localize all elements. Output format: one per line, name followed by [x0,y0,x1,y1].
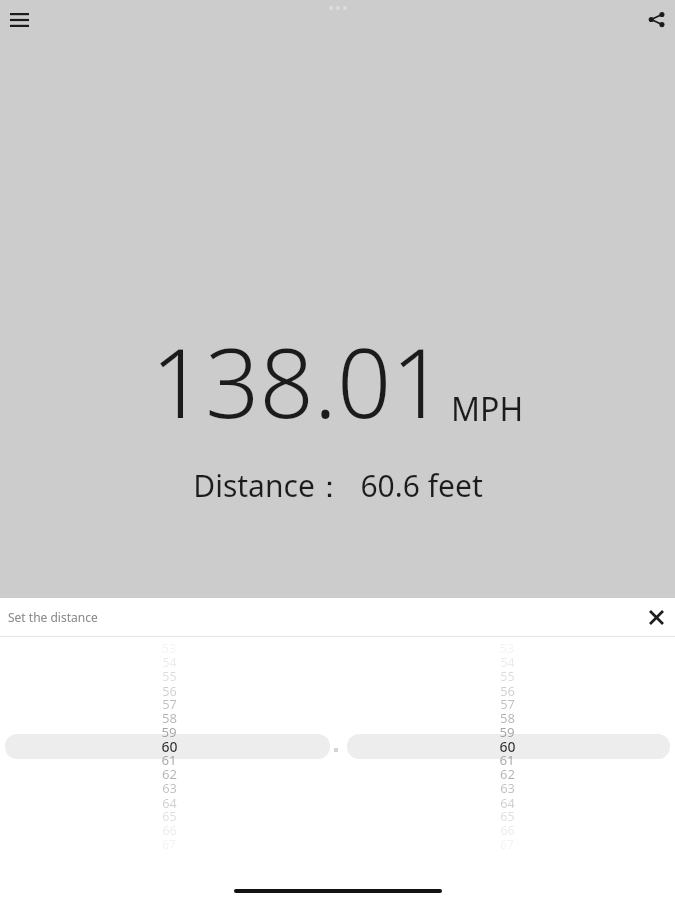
staticText: Distance： 60.6 feet [193,465,483,506]
staticText: 57 [500,695,515,713]
button[interactable]: Menu [3,4,35,36]
staticText: MPH [451,387,524,431]
staticText: 59 [161,723,177,741]
button[interactable]: 53 [134,637,204,855]
button[interactable]: Share [639,2,673,36]
button[interactable]: 53 [472,637,542,855]
staticText: 53 [500,640,514,656]
staticText: 67 [500,836,514,852]
staticText: 65 [500,808,515,825]
staticText: 54 [500,654,515,671]
staticText: 61 [499,751,515,769]
staticText: 60 [499,737,516,756]
staticText: 60 [161,737,178,756]
staticText: 55 [162,668,177,685]
staticText: 53 [162,640,176,656]
staticText: 57 [162,695,177,713]
staticText: 61 [161,751,177,769]
staticText: Set the distance [8,609,98,625]
staticText: 62 [500,765,515,783]
staticText: 66 [162,822,177,839]
staticText: 58 [162,709,177,727]
staticText: 55 [500,668,515,685]
staticText: 58 [500,709,515,727]
staticText: 62 [162,765,177,783]
staticText: 65 [162,808,177,825]
staticText: 56 [162,682,177,699]
staticText: 56 [500,682,515,699]
staticText: 54 [162,654,177,671]
staticText: 59 [499,723,515,741]
staticText: 63 [500,779,515,797]
staticText: 138.01 [151,316,446,445]
staticText: 64 [500,794,515,811]
button[interactable]: Close [639,600,673,634]
staticText: 66 [500,822,515,839]
staticText: 64 [162,794,177,811]
staticText: 67 [162,836,176,852]
staticText: 63 [162,779,177,797]
